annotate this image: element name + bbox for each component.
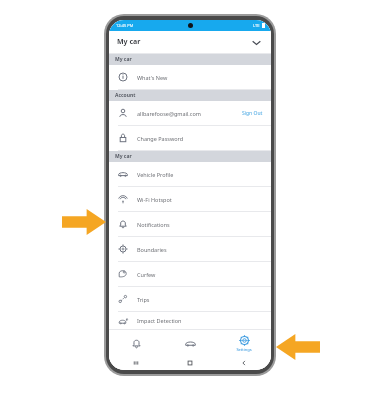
staticText: 12:45 PM <box>116 23 134 28</box>
other: Recents <box>132 359 140 367</box>
button[interactable]: Alerts <box>109 330 163 356</box>
button[interactable]: Impact Detection <box>109 312 271 329</box>
staticText: Settings <box>236 347 252 352</box>
button[interactable]: My car <box>163 330 217 356</box>
staticText: My car <box>115 56 132 63</box>
button[interactable]: Curfew <box>109 262 271 286</box>
button[interactable]: Notifications <box>109 212 271 236</box>
other: My car <box>185 338 196 349</box>
other: Home <box>186 359 194 367</box>
staticText: Boundaries <box>137 246 271 253</box>
staticText: Sign Out <box>242 110 263 117</box>
staticText: LTE <box>253 23 260 28</box>
staticText: Trips <box>137 296 271 303</box>
staticText: Change Password <box>137 135 271 142</box>
other: Alerts <box>131 338 142 349</box>
staticText: allbarefoose@gmail.com <box>137 110 242 117</box>
button[interactable]: My car <box>109 31 271 53</box>
staticText: Notifications <box>137 221 271 228</box>
button[interactable]: allbarefoose@gmail.com <box>109 101 271 125</box>
staticText: Account <box>115 92 136 99</box>
staticText: What's New <box>137 74 271 81</box>
staticText: Impact Detection <box>137 317 271 324</box>
other: Back <box>240 359 248 367</box>
staticText: Vehicle Profile <box>137 171 271 178</box>
other: Expand <box>251 37 262 48</box>
other: Settings <box>239 335 250 346</box>
staticText: Wi-Fi Hotspot <box>137 196 271 203</box>
staticText: My car <box>117 37 141 47</box>
button[interactable]: Wi-Fi Hotspot <box>109 187 271 211</box>
button[interactable]: Settings <box>217 330 271 356</box>
staticText: My car <box>115 153 132 160</box>
button[interactable]: Change Password <box>109 126 271 150</box>
staticText: Curfew <box>137 271 271 278</box>
button[interactable]: Boundaries <box>109 237 271 261</box>
button[interactable]: Trips <box>109 287 271 311</box>
button[interactable]: What's New <box>109 65 271 89</box>
button[interactable]: Vehicle Profile <box>109 162 271 186</box>
